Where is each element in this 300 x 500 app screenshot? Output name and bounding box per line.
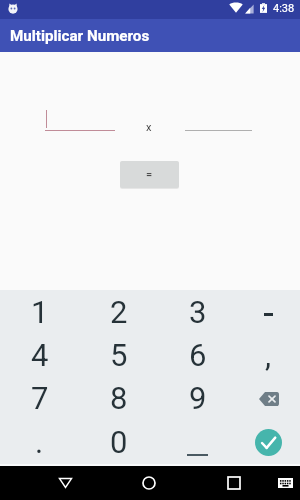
- staticText: x: [146, 121, 152, 134]
- button[interactable]: ,: [237, 333, 300, 376]
- button[interactable]: [45, 110, 115, 131]
- button[interactable]: [158, 420, 237, 464]
- staticText: 1: [31, 294, 49, 330]
- staticText: 0: [110, 424, 128, 460]
- staticText: ,: [265, 337, 272, 373]
- staticText: =: [146, 168, 153, 181]
- button[interactable]: [185, 110, 252, 131]
- button[interactable]: Back: [45, 472, 85, 494]
- button[interactable]: .: [0, 420, 79, 464]
- staticText: 4: [31, 337, 49, 373]
- button[interactable]: 2: [79, 290, 158, 333]
- button[interactable]: 7: [0, 376, 79, 420]
- button[interactable]: 5: [79, 333, 158, 376]
- other: Backspace: [259, 392, 279, 406]
- button[interactable]: =: [120, 161, 179, 188]
- staticText: 6: [189, 337, 207, 373]
- button[interactable]: [237, 290, 300, 333]
- button[interactable]: 0: [79, 420, 158, 464]
- staticText: 9: [189, 380, 207, 416]
- staticText: 8: [110, 380, 128, 416]
- button[interactable]: 9: [158, 376, 237, 420]
- button[interactable]: 1: [0, 290, 79, 333]
- button[interactable]: Home: [129, 472, 169, 494]
- button[interactable]: 4: [0, 333, 79, 376]
- button[interactable]: 6: [158, 333, 237, 376]
- button[interactable]: Switch keyboard: [271, 472, 299, 494]
- other: Done: [255, 429, 282, 456]
- button[interactable]: 8: [79, 376, 158, 420]
- button[interactable]: Recents: [214, 472, 254, 494]
- button[interactable]: Done: [237, 420, 300, 464]
- staticText: 4:38: [273, 2, 295, 15]
- button[interactable]: 3: [158, 290, 237, 333]
- staticText: 5: [110, 337, 128, 373]
- staticText: .: [35, 424, 44, 460]
- staticText: Multiplicar Numeros: [10, 27, 150, 45]
- staticText: 7: [31, 380, 49, 416]
- button[interactable]: Backspace: [237, 376, 300, 420]
- staticText: 2: [110, 294, 128, 330]
- staticText: 3: [189, 294, 207, 330]
